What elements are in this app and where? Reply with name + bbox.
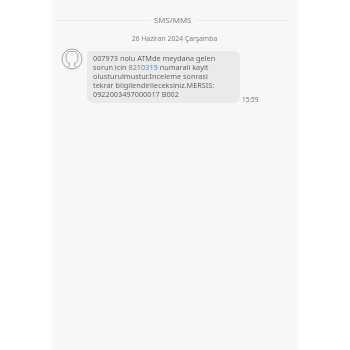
staticText: SMS/MMS [154,15,192,26]
button[interactable]: Contact avatar [61,48,83,70]
button[interactable]: 007973 nolu ATMde meydana gelen sorun ic… [87,51,240,103]
staticText: 15:59 [242,95,259,104]
staticText: 26 Haziran 2024 Çarşamba [50,34,299,43]
staticText: 007973 nolu ATMde meydana gelen sorun ic… [93,53,216,99]
